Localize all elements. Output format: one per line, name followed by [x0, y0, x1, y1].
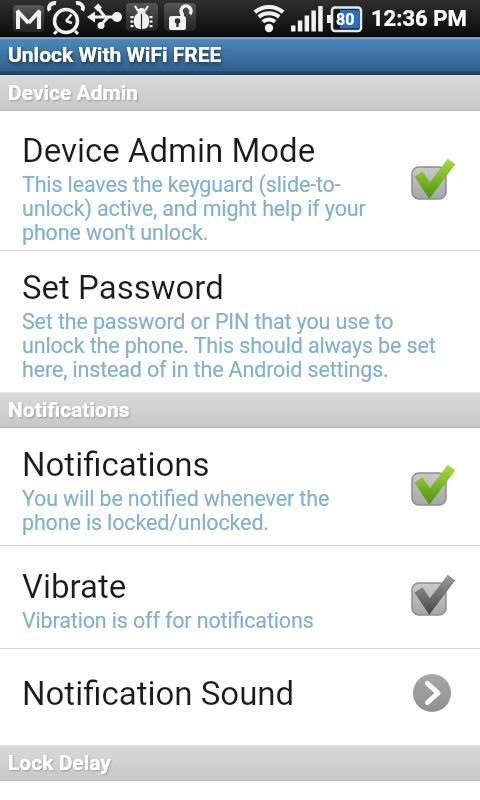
- staticText: Vibration is off for notifications: [22, 608, 314, 633]
- staticText: Unlock With WiFi FREE: [8, 43, 222, 68]
- staticText: You will be notified whenever the phone …: [22, 486, 330, 535]
- staticText: 12:36 PM: [371, 6, 467, 32]
- button[interactable]: Notifications: [0, 428, 480, 545]
- button[interactable]: Notification Sound: [0, 649, 480, 745]
- button[interactable]: Vibrate: [0, 546, 480, 648]
- staticText: Vibrate: [22, 567, 127, 606]
- staticText: Lock Delay: [8, 751, 111, 776]
- staticText: This leaves the keyguard (slide-to- unlo…: [22, 172, 366, 245]
- button[interactable]: Device Admin Mode: [0, 111, 480, 250]
- staticText: Notification Sound: [22, 674, 295, 713]
- button[interactable]: Set Password: [0, 251, 480, 392]
- staticText: Device Admin: [8, 81, 139, 106]
- staticText: 80: [336, 10, 355, 29]
- staticText: Notifications: [22, 445, 210, 484]
- staticText: Device Admin Mode: [22, 131, 316, 170]
- staticText: Notifications: [8, 398, 130, 423]
- staticText: Set Password: [22, 268, 224, 307]
- staticText: Set the password or PIN that you use to …: [22, 309, 436, 382]
